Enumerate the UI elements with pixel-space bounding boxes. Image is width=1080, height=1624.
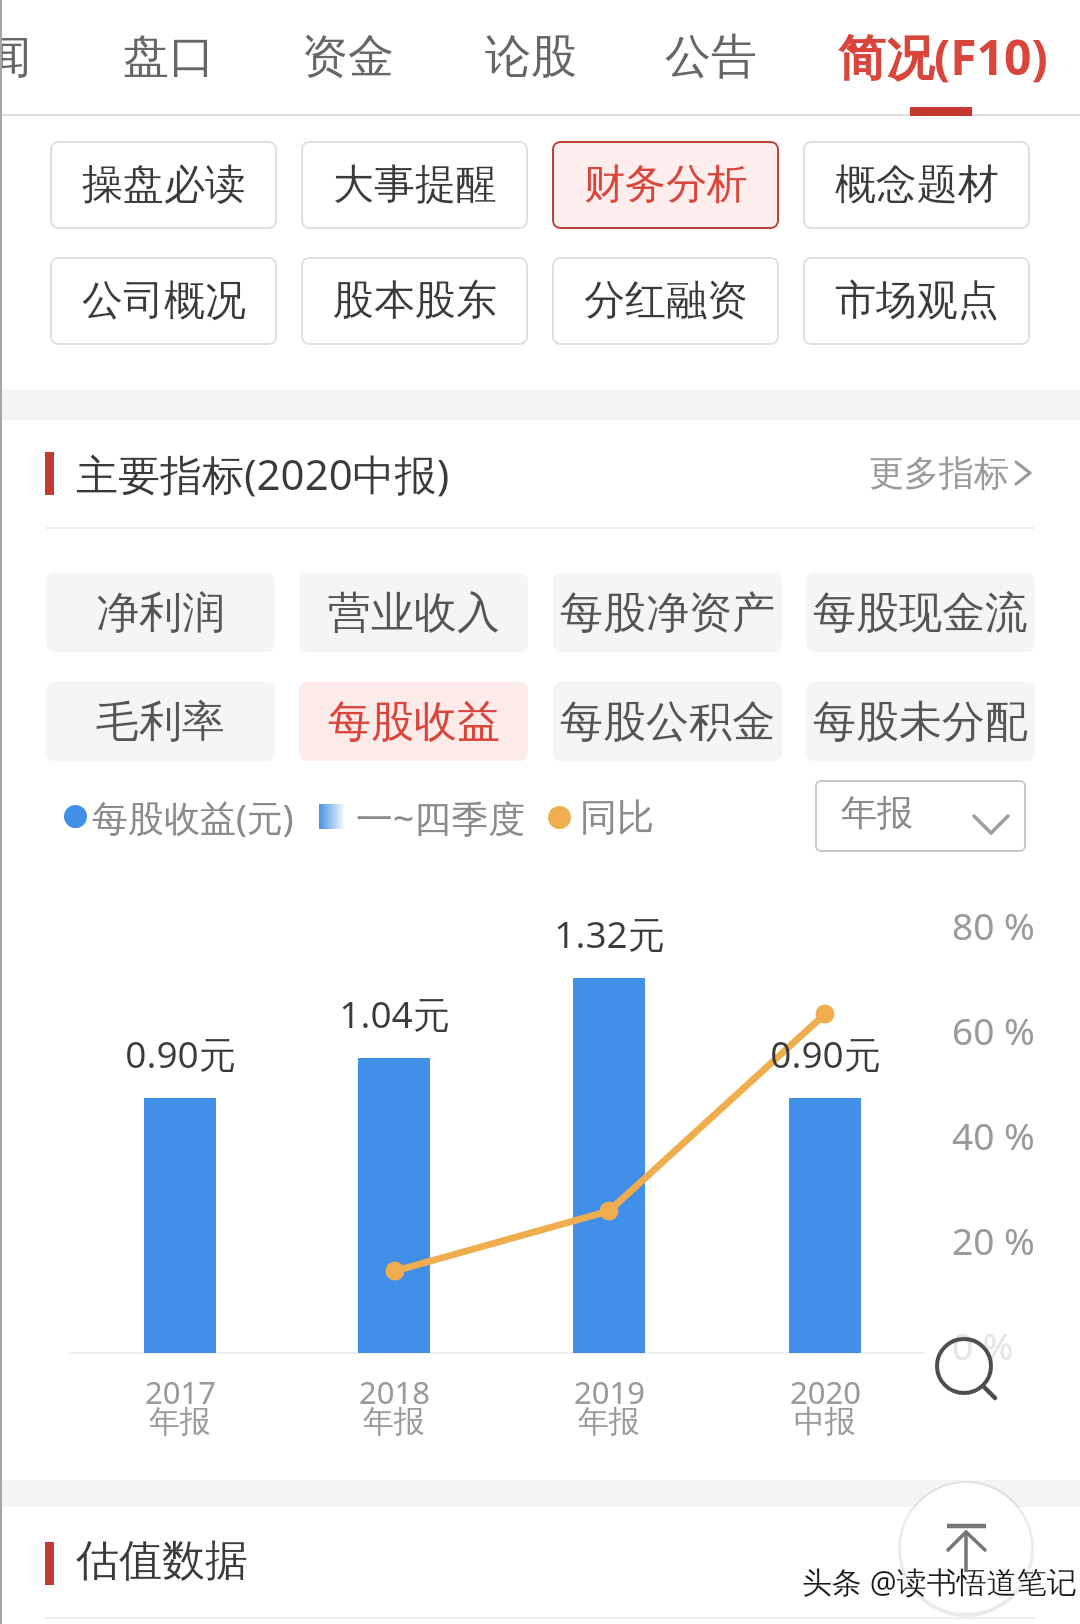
staticText: 0.90元 bbox=[125, 1028, 236, 1079]
staticText: 净利润 bbox=[96, 586, 225, 640]
staticText: 主要指标(2020中报) bbox=[76, 445, 450, 502]
button[interactable]: Zoom chart bbox=[930, 1330, 1010, 1410]
button[interactable]: 公告 bbox=[621, 0, 801, 114]
staticText: 分红融资 bbox=[584, 275, 748, 327]
staticText: 年报 bbox=[578, 1402, 640, 1441]
staticText: 同比 bbox=[580, 794, 654, 841]
button[interactable]: 论股 bbox=[441, 0, 621, 114]
button[interactable]: 每股净资产 bbox=[553, 573, 782, 652]
staticText: 毛利率 bbox=[96, 695, 225, 749]
staticText: 闻 bbox=[0, 28, 31, 86]
staticText: 年报 bbox=[363, 1402, 425, 1441]
staticText: 每股未分配 bbox=[813, 695, 1028, 749]
staticText: 一~四季度 bbox=[356, 792, 526, 843]
button[interactable]: 操盘必读 bbox=[50, 141, 277, 229]
staticText: 每股公积金 bbox=[560, 695, 775, 749]
staticText: 资金 bbox=[302, 28, 394, 86]
button[interactable]: 每股未分配 bbox=[806, 682, 1035, 761]
staticText: 每股收益(元) bbox=[92, 793, 294, 842]
staticText: 营业收入 bbox=[328, 586, 500, 640]
staticText: 论股 bbox=[485, 28, 577, 86]
staticText: 年报 bbox=[841, 790, 913, 835]
staticText: 80 % bbox=[952, 900, 1035, 950]
staticText: 0 % bbox=[952, 1320, 1014, 1370]
button[interactable]: 分红融资 bbox=[552, 257, 779, 345]
staticText: 20 % bbox=[952, 1215, 1035, 1265]
staticText: 每股收益 bbox=[328, 695, 500, 749]
staticText: 概念题材 bbox=[835, 159, 999, 211]
button[interactable]: 闻 bbox=[0, 0, 98, 114]
staticText: 2019 bbox=[574, 1371, 645, 1413]
staticText: 头条 @读书悟道笔记 bbox=[802, 1561, 1077, 1602]
button[interactable]: 公司概况 bbox=[50, 257, 277, 345]
staticText: 每股净资产 bbox=[560, 586, 775, 640]
button[interactable]: 概念题材 bbox=[803, 141, 1030, 229]
staticText: 2020 bbox=[790, 1371, 861, 1413]
staticText: 公司概况 bbox=[82, 275, 246, 327]
button[interactable]: 净利润 bbox=[46, 573, 275, 652]
button[interactable]: 每股公积金 bbox=[553, 682, 782, 761]
button[interactable]: 每股收益 bbox=[299, 682, 528, 761]
staticText: 每股现金流 bbox=[813, 586, 1028, 640]
button[interactable]: Back to top bbox=[901, 1483, 1031, 1613]
staticText: 年报 bbox=[149, 1402, 211, 1441]
button[interactable]: 大事提醒 bbox=[301, 141, 528, 229]
button[interactable]: 财务分析 bbox=[552, 141, 779, 229]
button[interactable]: 年报 bbox=[815, 780, 1026, 852]
button[interactable]: 盘口 bbox=[79, 0, 259, 114]
button[interactable]: 更多指标 bbox=[860, 437, 1037, 509]
button[interactable]: 每股现金流 bbox=[806, 573, 1035, 652]
button[interactable]: 股本股东 bbox=[301, 257, 528, 345]
staticText: 简况(F10) bbox=[838, 24, 1048, 90]
staticText: 2018 bbox=[359, 1371, 430, 1413]
button[interactable]: 营业收入 bbox=[299, 573, 528, 652]
button[interactable]: 市场观点 bbox=[803, 257, 1030, 345]
button[interactable]: 资金 bbox=[258, 0, 438, 114]
staticText: 更多指标 bbox=[869, 451, 1009, 495]
button[interactable]: 简况(F10) bbox=[828, 0, 1058, 114]
staticText: 2017 bbox=[145, 1371, 216, 1413]
staticText: 盘口 bbox=[123, 28, 215, 86]
staticText: 1.04元 bbox=[339, 988, 450, 1039]
staticText: 操盘必读 bbox=[82, 159, 246, 211]
staticText: 市场观点 bbox=[835, 275, 999, 327]
staticText: 0.90元 bbox=[770, 1028, 881, 1079]
staticText: 估值数据 bbox=[76, 1534, 248, 1588]
staticText: 财务分析 bbox=[584, 159, 748, 211]
staticText: 公告 bbox=[665, 28, 757, 86]
staticText: 股本股东 bbox=[333, 275, 497, 327]
button[interactable]: 毛利率 bbox=[46, 682, 275, 761]
staticText: 1.32元 bbox=[554, 908, 665, 959]
staticText: 40 % bbox=[952, 1110, 1035, 1160]
staticText: 中报 bbox=[794, 1402, 856, 1441]
staticText: 60 % bbox=[952, 1005, 1035, 1055]
staticText: 大事提醒 bbox=[333, 159, 497, 211]
